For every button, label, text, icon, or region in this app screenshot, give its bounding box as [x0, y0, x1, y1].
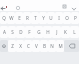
button[interactable]: P	[71, 12, 79, 24]
staticText: J	[56, 29, 58, 35]
staticText: N	[50, 43, 54, 49]
staticText: D	[19, 29, 23, 35]
staticText: Q	[2, 15, 6, 21]
staticText: C	[27, 43, 30, 49]
button[interactable]: B	[40, 40, 48, 52]
staticText: A	[3, 29, 6, 35]
button[interactable]: L	[70, 26, 79, 38]
staticText: B	[43, 43, 46, 49]
staticText: V	[35, 43, 38, 49]
staticText: E	[18, 15, 21, 21]
staticText: Z	[11, 43, 14, 49]
button[interactable]: V	[32, 40, 40, 52]
button[interactable]: O	[63, 12, 71, 24]
button[interactable]: Backspace	[64, 40, 79, 52]
button[interactable]: G	[34, 26, 43, 38]
button[interactable]: Shift	[0, 40, 8, 52]
staticText: M	[58, 43, 63, 49]
button[interactable]: Theme	[4, 4, 9, 9]
button[interactable]: C	[24, 40, 32, 52]
button[interactable]: Collapse keyboard	[70, 5, 77, 12]
staticText: U	[49, 15, 53, 21]
button[interactable]: E	[15, 12, 23, 24]
button[interactable]: D	[16, 26, 25, 38]
button[interactable]: S	[8, 26, 16, 38]
button[interactable]: J	[52, 26, 61, 38]
staticText: X	[19, 43, 22, 49]
button[interactable]: H	[43, 26, 52, 38]
staticText: T	[34, 15, 37, 21]
staticText: L	[73, 29, 76, 35]
button[interactable]: W	[7, 12, 15, 24]
staticText: G	[37, 29, 41, 35]
button[interactable]: X	[16, 40, 24, 52]
button[interactable]: T	[31, 12, 39, 24]
button[interactable]: Y	[39, 12, 47, 24]
button[interactable]: M	[56, 40, 64, 52]
staticText: K	[64, 29, 67, 35]
button[interactable]: U	[47, 12, 55, 24]
button[interactable]: F	[25, 26, 34, 38]
button[interactable]: N	[48, 40, 56, 52]
button[interactable]: Z	[8, 40, 16, 52]
button[interactable]: Back	[0, 5, 6, 12]
button[interactable]: R	[23, 12, 31, 24]
button[interactable]: K	[61, 26, 70, 38]
staticText: Y	[42, 15, 45, 21]
staticText: W	[9, 15, 14, 21]
button[interactable]: I	[55, 12, 63, 24]
staticText: S	[11, 29, 14, 35]
staticText: F	[28, 29, 31, 35]
button[interactable]: Clipboard	[61, 3, 68, 10]
button[interactable]: A	[0, 26, 8, 38]
staticText: O	[65, 15, 69, 21]
staticText: H	[46, 29, 50, 35]
staticText: R	[26, 15, 29, 21]
staticText: I	[58, 15, 60, 21]
button[interactable]: Q	[0, 12, 7, 24]
button[interactable]: Sticker	[14, 4, 21, 11]
staticText: P	[74, 15, 77, 21]
